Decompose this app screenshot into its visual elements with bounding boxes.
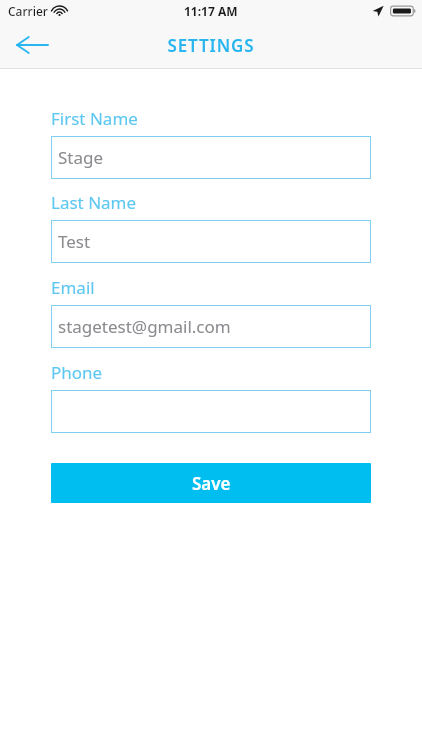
button[interactable]: stagetest@gmail.com [51,305,371,348]
button[interactable]: Stage [51,136,371,179]
staticText: Last Name [51,191,137,214]
staticText: Test [58,230,91,253]
button[interactable] [51,390,371,433]
button[interactable]: Test [51,220,371,263]
staticText: First Name [51,107,138,130]
staticText: Email [51,276,95,299]
staticText: 11:17 AM [184,3,238,19]
staticText: SETTINGS [167,34,255,57]
staticText: Phone [51,361,103,384]
button[interactable]: Save [51,463,371,503]
button[interactable]: Back [9,25,55,65]
staticText: stagetest@gmail.com [58,315,231,338]
staticText: Stage [58,146,104,169]
staticText: Carrier [8,3,48,19]
staticText: Save [192,472,231,495]
